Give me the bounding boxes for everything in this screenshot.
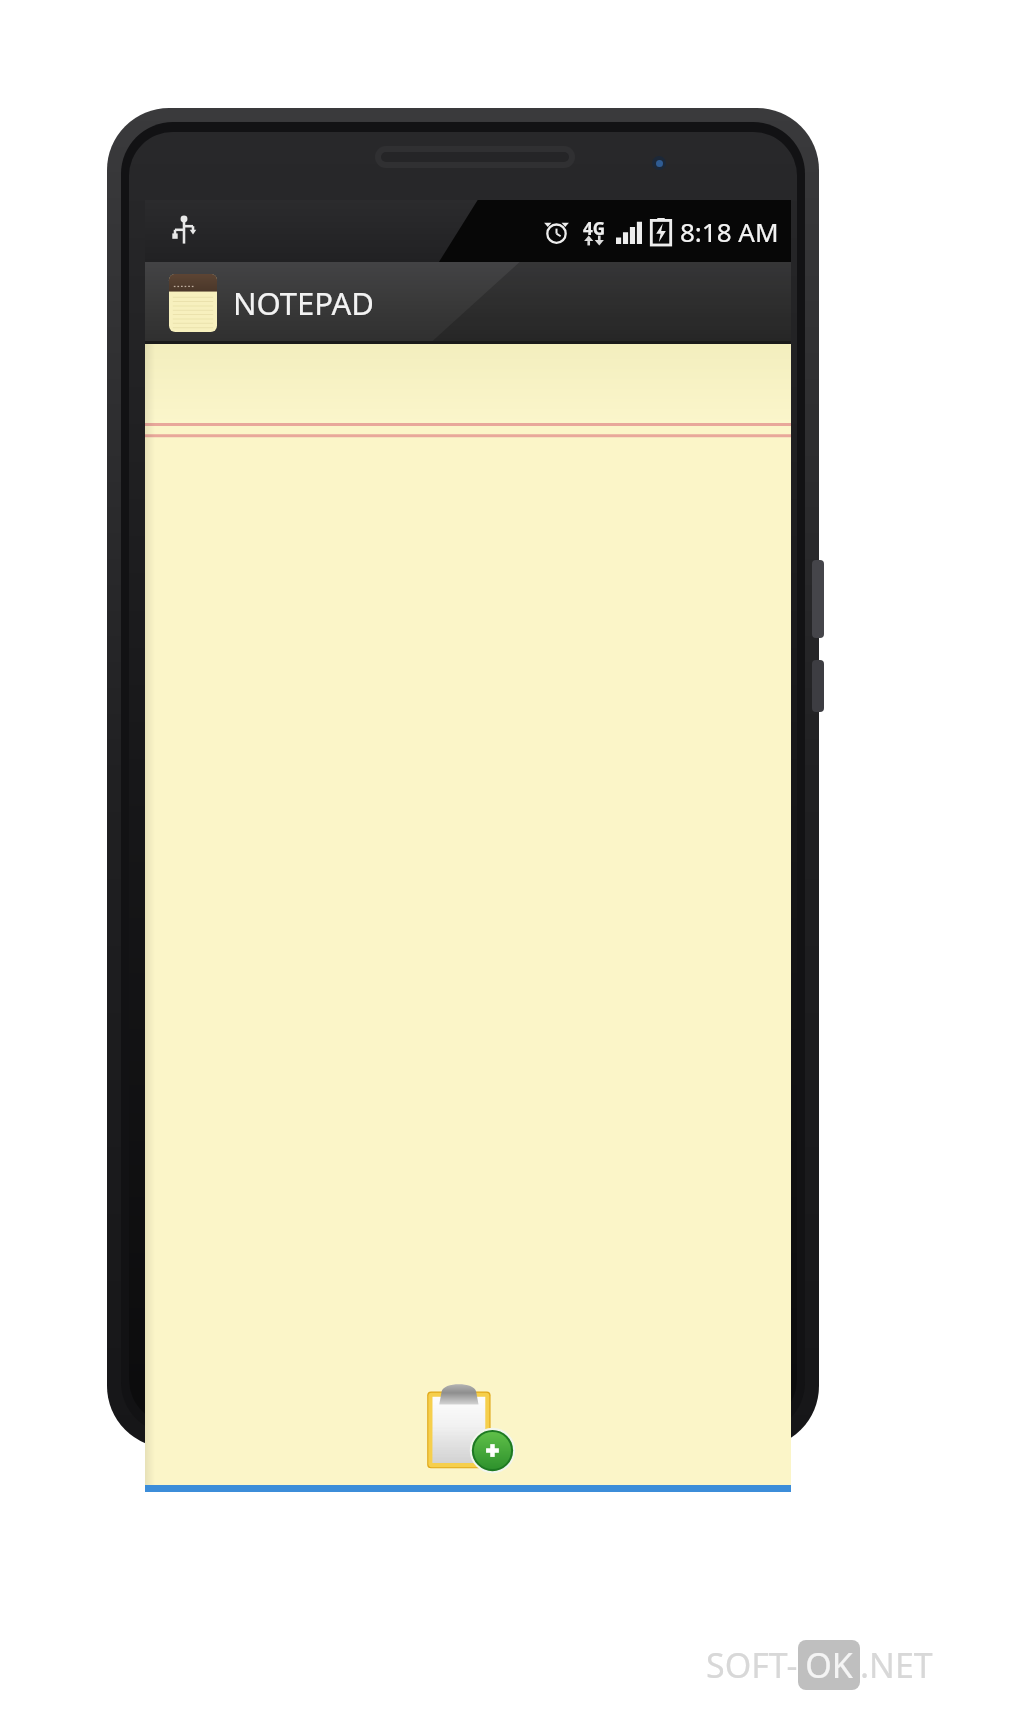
staticText: OK bbox=[805, 1642, 853, 1688]
button[interactable]: New note bbox=[416, 1375, 520, 1479]
staticText: 4G bbox=[583, 217, 606, 240]
button[interactable]: New note bbox=[145, 344, 791, 1485]
staticText: SOFT- bbox=[706, 1642, 798, 1688]
staticText: .NET bbox=[860, 1642, 933, 1688]
staticText: 8:18 AM bbox=[680, 214, 779, 249]
button[interactable]: NOTEPAD bbox=[145, 262, 791, 344]
staticText: NOTEPAD bbox=[233, 282, 374, 324]
